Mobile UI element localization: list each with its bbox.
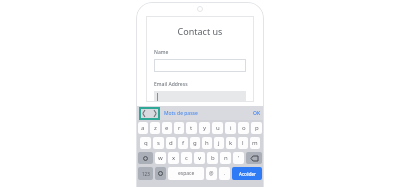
button[interactable]: b bbox=[207, 152, 218, 164]
button[interactable]: j bbox=[214, 137, 224, 149]
button[interactable]: Emoji bbox=[155, 167, 166, 180]
staticText: q bbox=[144, 139, 148, 147]
button[interactable]: p bbox=[251, 122, 262, 134]
staticText: n bbox=[224, 154, 228, 162]
staticText: x bbox=[172, 154, 176, 162]
button[interactable]: u bbox=[212, 122, 223, 134]
button[interactable]: Navigate fields bbox=[142, 107, 157, 120]
button[interactable]: f bbox=[178, 137, 188, 149]
staticText: . bbox=[224, 170, 226, 177]
staticText: d bbox=[169, 139, 173, 147]
staticText: p bbox=[255, 124, 259, 132]
staticText: o bbox=[242, 124, 246, 132]
staticText: espace bbox=[178, 170, 195, 177]
button[interactable]: s bbox=[153, 137, 164, 149]
staticText: k bbox=[229, 139, 233, 147]
staticText: Contact us bbox=[154, 25, 246, 37]
staticText: j bbox=[218, 139, 220, 147]
staticText: g bbox=[193, 139, 197, 147]
button[interactable]: Backspace bbox=[246, 152, 262, 164]
button[interactable]: n bbox=[220, 152, 231, 164]
button[interactable]: x bbox=[168, 152, 179, 164]
staticText: v bbox=[198, 154, 202, 162]
button[interactable]: ' bbox=[233, 152, 244, 164]
staticText: i bbox=[230, 124, 232, 132]
staticText: h bbox=[205, 139, 209, 147]
button[interactable]: a bbox=[138, 122, 148, 134]
staticText: Name bbox=[154, 49, 169, 56]
button[interactable]: @ bbox=[206, 167, 217, 180]
button[interactable]: c bbox=[181, 152, 192, 164]
button[interactable]: OK bbox=[253, 110, 261, 117]
staticText: Email Address bbox=[154, 81, 188, 88]
staticText: ' bbox=[238, 154, 240, 162]
button[interactable]: r bbox=[174, 122, 184, 134]
button[interactable]: 123 bbox=[138, 167, 153, 180]
staticText: 123 bbox=[142, 171, 150, 177]
button[interactable]: i bbox=[225, 122, 236, 134]
staticText: y bbox=[203, 124, 207, 132]
button[interactable]: g bbox=[190, 137, 200, 149]
staticText: a bbox=[141, 124, 145, 132]
button[interactable]: v bbox=[194, 152, 205, 164]
staticText: e bbox=[165, 124, 169, 132]
button[interactable]: k bbox=[226, 137, 236, 149]
button[interactable]: w bbox=[155, 152, 166, 164]
button[interactable]: z bbox=[150, 122, 160, 134]
staticText: @ bbox=[209, 170, 214, 177]
staticText: z bbox=[154, 124, 157, 132]
button[interactable]: Shift bbox=[138, 152, 153, 164]
button[interactable]: m bbox=[250, 137, 260, 149]
staticText: f bbox=[182, 139, 185, 147]
staticText: w bbox=[158, 154, 163, 162]
staticText: Mots de passe bbox=[164, 110, 198, 117]
staticText: OK bbox=[253, 110, 261, 117]
button[interactable]: . bbox=[219, 167, 230, 180]
staticText: c bbox=[185, 154, 188, 162]
button[interactable]: q bbox=[140, 137, 151, 149]
button[interactable]: t bbox=[186, 122, 197, 134]
button[interactable] bbox=[154, 91, 246, 102]
staticText: l bbox=[242, 139, 244, 147]
button[interactable]: e bbox=[162, 122, 172, 134]
staticText: s bbox=[157, 139, 160, 147]
button[interactable] bbox=[154, 59, 246, 72]
staticText: t bbox=[190, 124, 193, 132]
button[interactable]: o bbox=[238, 122, 249, 134]
button[interactable]: d bbox=[166, 137, 176, 149]
staticText: u bbox=[216, 124, 220, 132]
button[interactable]: l bbox=[238, 137, 248, 149]
button[interactable]: espace bbox=[168, 167, 204, 180]
button[interactable]: Accéder bbox=[232, 167, 262, 180]
staticText: r bbox=[178, 124, 181, 132]
staticText: Accéder bbox=[239, 171, 256, 177]
button[interactable]: y bbox=[199, 122, 210, 134]
staticText: b bbox=[211, 154, 215, 162]
staticText: m bbox=[252, 139, 258, 147]
button[interactable]: h bbox=[202, 137, 212, 149]
